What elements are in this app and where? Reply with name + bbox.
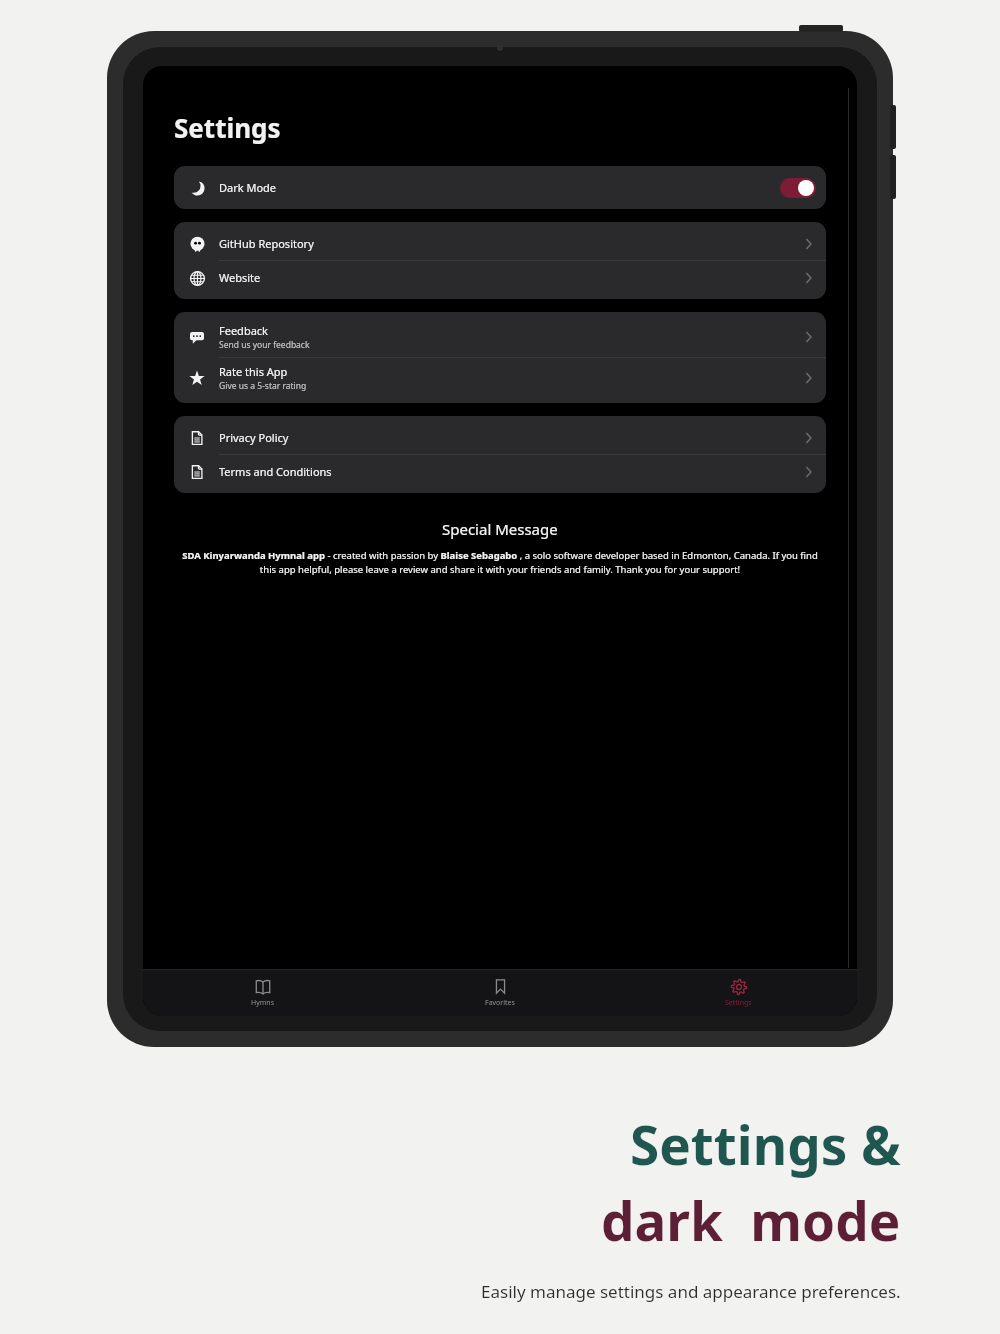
button[interactable]: Hymns <box>143 970 381 1016</box>
button[interactable]: GitHub Repository <box>174 227 826 260</box>
staticText: Dark Mode <box>219 180 277 195</box>
staticText: Favorites <box>485 998 515 1008</box>
staticText: Feedback <box>219 323 268 338</box>
staticText: Settings <box>174 110 281 145</box>
button[interactable]: Rate this App <box>174 358 826 398</box>
staticText: GitHub Repository <box>219 236 314 251</box>
staticText: Settings <box>725 998 752 1008</box>
button[interactable]: Feedback <box>174 317 826 357</box>
button[interactable]: Favorites <box>381 970 619 1016</box>
staticText: Privacy Policy <box>219 430 289 445</box>
staticText: Rate this App <box>219 364 288 379</box>
button[interactable]: Dark Mode <box>174 171 826 204</box>
button[interactable]: Settings <box>619 970 857 1016</box>
staticText: Give us a 5-star rating <box>219 380 307 392</box>
button[interactable]: Website <box>174 261 826 294</box>
staticText: Hymns <box>251 998 274 1008</box>
button[interactable]: Privacy Policy <box>174 421 826 454</box>
staticText: Settings & <box>630 1108 901 1180</box>
staticText: Easily manage settings and appearance pr… <box>481 1280 901 1303</box>
staticText: Website <box>219 270 261 285</box>
staticText: Terms and Conditions <box>219 464 332 479</box>
staticText: Send us your feedback <box>219 339 310 351</box>
staticText: dark mode <box>601 1184 901 1256</box>
staticText: Special Message <box>442 519 558 539</box>
button[interactable]: Terms and Conditions <box>174 455 826 488</box>
button[interactable]: Dark Mode toggle <box>780 178 816 198</box>
staticText: SDA Kinyarwanda Hymnal app - created wit… <box>181 549 819 575</box>
